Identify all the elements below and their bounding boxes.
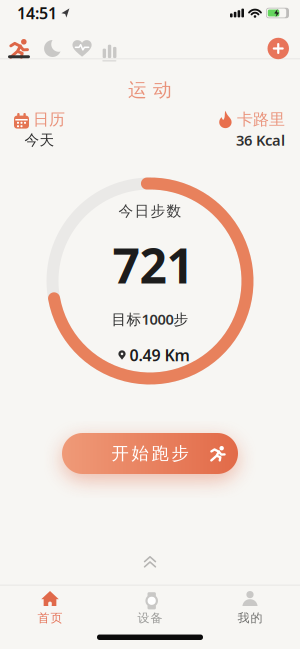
staticText: 目标1000步 xyxy=(111,309,188,329)
button[interactable]: 开始跑步 xyxy=(62,433,238,474)
staticText: 0.49 Km xyxy=(130,344,190,366)
button[interactable]: 睡眠 xyxy=(28,40,61,57)
button[interactable]: 设备 xyxy=(100,590,200,622)
button[interactable]: 统计 xyxy=(92,38,117,58)
button[interactable]: 心率 xyxy=(61,39,92,57)
staticText: 我的 xyxy=(237,611,262,625)
button[interactable]: 日历 xyxy=(14,111,65,145)
staticText: 首页 xyxy=(37,611,62,625)
staticText: 开始跑步 xyxy=(111,443,188,464)
button[interactable]: 我的 xyxy=(200,590,300,622)
button[interactable]: 首页 xyxy=(0,590,100,622)
staticText: 卡路里 xyxy=(237,110,285,129)
staticText: 今天 xyxy=(24,131,54,149)
staticText: 今日步数 xyxy=(118,202,181,220)
button[interactable]: 展开 xyxy=(144,556,156,568)
button[interactable]: 运动 xyxy=(10,39,28,58)
staticText: 设备 xyxy=(137,611,162,625)
button[interactable]: 添加 xyxy=(267,38,289,59)
staticText: 运动 xyxy=(128,78,172,101)
staticText: 721 xyxy=(112,233,193,297)
staticText: 日历 xyxy=(33,110,65,129)
staticText: 14:51 xyxy=(17,2,57,24)
staticText: 36 Kcal xyxy=(236,130,285,150)
button[interactable]: 卡路里 xyxy=(219,111,285,145)
